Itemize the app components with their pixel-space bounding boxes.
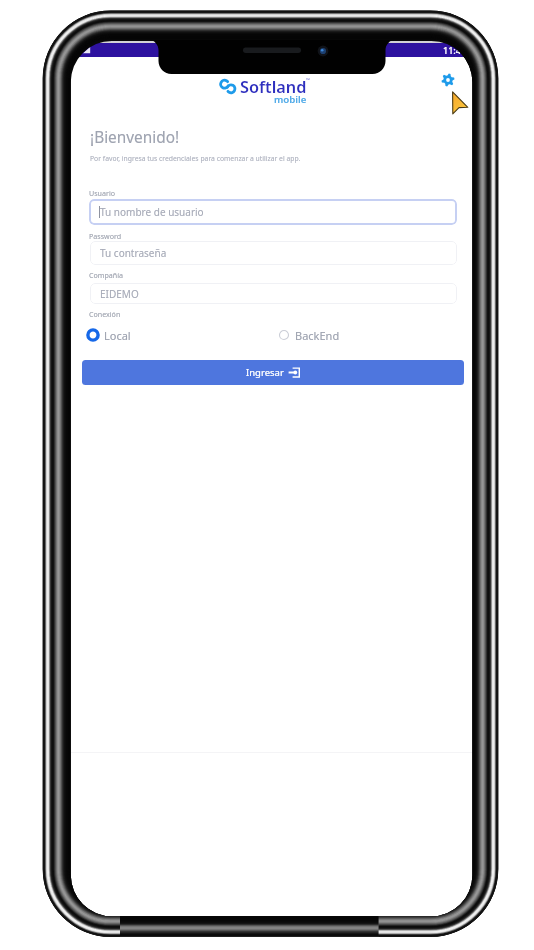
staticText: Usuario (89, 188, 115, 198)
staticText: 11:46 (443, 44, 467, 56)
staticText: Password (89, 231, 122, 241)
button[interactable]: EIDEMO (90, 283, 457, 304)
staticText: Tu contraseña (100, 246, 167, 260)
button[interactable]: Settings (437, 69, 459, 91)
staticText: BackEnd (295, 328, 340, 343)
staticText: Tu nombre de usuario (100, 205, 204, 219)
staticText: Compañía (89, 270, 123, 280)
staticText: EIDEMO (100, 287, 139, 301)
button[interactable]: Tu nombre de usuario (89, 199, 457, 225)
button[interactable]: Ingresar (82, 360, 464, 385)
staticText: Conexión (89, 309, 121, 319)
staticText: mobile (274, 93, 307, 106)
button[interactable]: Tu contraseña (90, 241, 457, 265)
staticText: ¡Bienvenido! (90, 127, 180, 148)
staticText: Local (104, 328, 131, 343)
button[interactable]: BackEnd (277, 326, 463, 344)
button[interactable]: Local (86, 326, 272, 344)
staticText: Softland (240, 76, 307, 98)
staticText: Por favor, ingresa tus credenciales para… (90, 154, 301, 163)
staticText: Ingresar (246, 366, 284, 379)
staticText: ™ (306, 77, 310, 84)
